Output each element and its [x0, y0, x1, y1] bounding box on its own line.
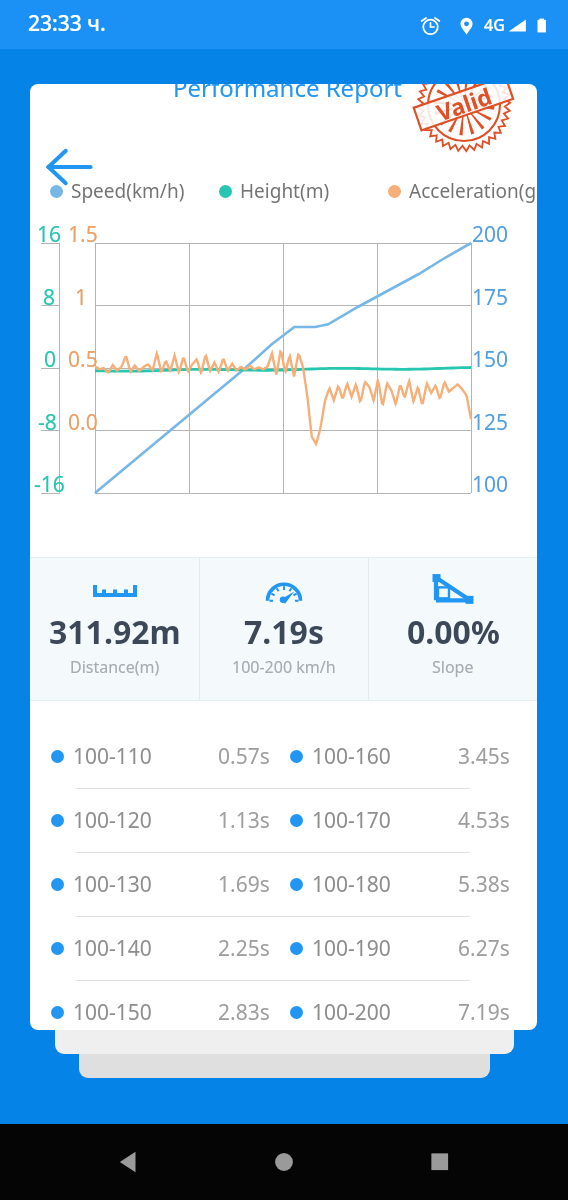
- staticText: 100-120: [73, 806, 152, 835]
- staticText: 0.0: [68, 408, 98, 437]
- staticText: 1.5: [68, 220, 98, 249]
- staticText: Speed(km/h): [71, 178, 185, 204]
- button[interactable]: Home: [257, 1135, 311, 1189]
- staticText: 100-170: [312, 806, 391, 835]
- button[interactable]: 7.19s: [200, 558, 368, 700]
- staticText: 100: [472, 470, 509, 499]
- staticText: 2.25s: [218, 934, 270, 963]
- button[interactable]: 311.92m: [30, 558, 199, 700]
- button[interactable]: Back: [42, 140, 96, 194]
- staticText: 150: [472, 345, 509, 374]
- button[interactable]: 100-140: [30, 917, 537, 980]
- button[interactable]: Recent apps: [413, 1135, 467, 1189]
- button[interactable]: 100-120: [30, 789, 537, 852]
- staticText: 0.5: [68, 345, 98, 374]
- staticText: 7.19s: [244, 610, 324, 654]
- staticText: 200: [472, 220, 509, 249]
- staticText: 0.00%: [407, 610, 500, 654]
- staticText: -8: [38, 408, 57, 437]
- staticText: -16: [34, 470, 65, 499]
- button[interactable]: 100-130: [30, 853, 537, 916]
- staticText: 100-160: [312, 742, 391, 771]
- staticText: 8: [43, 283, 56, 312]
- staticText: 100-190: [312, 934, 391, 963]
- staticText: Distance(m): [70, 656, 160, 678]
- staticText: 175: [472, 283, 509, 312]
- staticText: 23:33 ч.: [28, 9, 106, 38]
- staticText: 1.13s: [218, 806, 270, 835]
- staticText: 0.57s: [218, 742, 270, 771]
- staticText: 125: [472, 408, 509, 437]
- button[interactable]: 100-110: [30, 725, 537, 788]
- staticText: 0: [44, 345, 57, 374]
- staticText: 3.45s: [458, 742, 510, 771]
- staticText: Performance Report: [173, 84, 403, 104]
- staticText: 1.69s: [218, 870, 270, 899]
- staticText: Slope: [432, 656, 474, 678]
- staticText: 4G: [484, 14, 505, 36]
- staticText: 311.92m: [49, 610, 181, 654]
- staticText: 100-130: [73, 870, 152, 899]
- staticText: 100-200 km/h: [232, 656, 336, 678]
- staticText: Height(m): [240, 178, 330, 204]
- staticText: 16: [37, 220, 62, 249]
- staticText: 7.19s: [458, 998, 510, 1027]
- staticText: Acceleration(g): [409, 178, 537, 204]
- staticText: 2.83s: [218, 998, 270, 1027]
- staticText: 100-200: [312, 998, 391, 1027]
- button[interactable]: Back: [102, 1135, 156, 1189]
- staticText: Valid: [432, 84, 496, 127]
- staticText: 4.53s: [458, 806, 510, 835]
- staticText: 5.38s: [458, 870, 510, 899]
- staticText: 100-110: [73, 742, 152, 771]
- staticText: 6.27s: [458, 934, 510, 963]
- button[interactable]: 100-150: [30, 981, 537, 1030]
- staticText: 100-150: [73, 998, 152, 1027]
- button[interactable]: 0.00%: [369, 558, 537, 700]
- staticText: 100-180: [312, 870, 391, 899]
- staticText: 100-140: [73, 934, 152, 963]
- staticText: 1: [75, 283, 88, 312]
